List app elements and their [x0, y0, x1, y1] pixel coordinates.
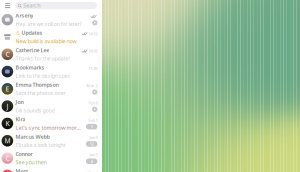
staticText: M [4, 136, 10, 145]
button[interactable]: M [0, 167, 102, 172]
staticText: Thanks for the update! [15, 55, 69, 62]
staticText: Link to the design spec [15, 72, 70, 79]
staticText: Hey, are we still on for later? [15, 20, 81, 27]
button[interactable]: E [0, 80, 102, 97]
staticText: Jan 9 [89, 135, 97, 140]
button[interactable]: K [0, 115, 102, 132]
staticText: Ok sounds good [15, 107, 54, 114]
staticText: 12 [90, 141, 94, 147]
staticText: Emma Thompson [15, 81, 58, 88]
staticText: J [6, 102, 8, 111]
button[interactable]: M [0, 132, 102, 149]
button[interactable]: Arseny [0, 11, 102, 28]
staticText: 14:02 [88, 48, 97, 54]
staticText: Arseny [15, 12, 33, 19]
staticText: Catherine Lee [15, 46, 49, 54]
staticText: C [5, 154, 9, 162]
staticText: Jan 3 [89, 152, 97, 157]
staticText: Updates [21, 29, 42, 36]
staticText: C [5, 50, 9, 59]
staticText: New build is available now [15, 38, 76, 45]
staticText: Dec 2 [87, 169, 97, 172]
staticText: 1 [91, 124, 93, 129]
staticText: Feb 1 [88, 117, 97, 123]
staticText: Mom [15, 168, 28, 172]
staticText: Feb 8 [88, 100, 97, 105]
staticText: 4 [91, 159, 93, 164]
button[interactable]: Bookmarks [0, 63, 102, 80]
staticText: 11:40 [88, 66, 97, 71]
staticText: Mar 2 [86, 83, 97, 88]
staticText: Marcus Webb [15, 133, 49, 140]
staticText: K [5, 119, 9, 128]
staticText: Jon [15, 98, 23, 105]
button[interactable]: C [0, 149, 102, 167]
staticText: Connor [15, 150, 32, 157]
button[interactable]: C [0, 46, 102, 63]
staticText: ⚠ [15, 30, 20, 36]
button[interactable]: ⚠ [0, 28, 102, 46]
staticText: Sent the photos over [15, 89, 65, 97]
staticText: I’ll take a look tonight [15, 141, 65, 148]
button[interactable]: J [0, 97, 102, 115]
button[interactable]: Menu [3, 0, 12, 11]
staticText: E [5, 84, 9, 93]
staticText: Search [23, 2, 40, 9]
button[interactable]: Search [15, 2, 97, 9]
staticText: Kira [15, 116, 25, 123]
staticText: See you then [15, 159, 46, 166]
staticText: Let’s sync tomorrow morning [15, 124, 80, 131]
staticText: 14:52 [88, 31, 97, 36]
staticText: Bookmarks [15, 64, 44, 71]
